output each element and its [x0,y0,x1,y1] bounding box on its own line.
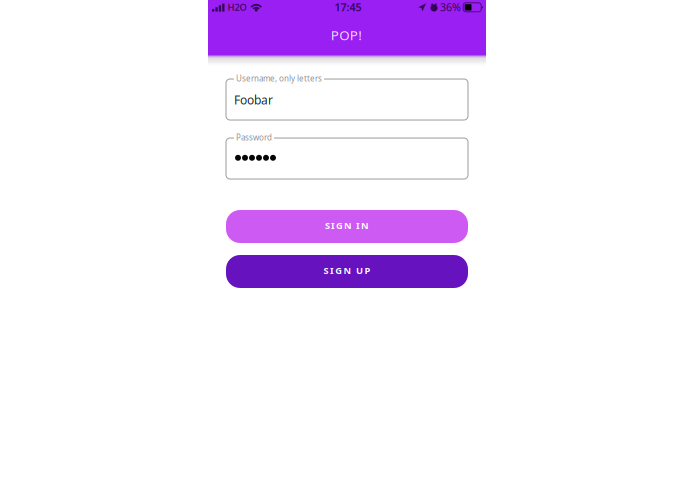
staticText: SIGN UP [324,264,370,277]
staticText: Username, only letters [236,73,322,84]
button[interactable]: SIGN IN [226,210,468,243]
staticText: H2O [227,1,246,13]
staticText: 17:45 [334,0,361,14]
staticText: POP! [331,26,362,44]
button[interactable]: Password [226,138,468,179]
staticText: SIGN IN [325,219,369,232]
button[interactable]: SIGN UP [226,255,468,288]
staticText: 36% [440,0,461,14]
staticText: Foobar [234,92,273,108]
button[interactable]: Foobar [226,79,468,120]
staticText: Password [236,132,272,143]
